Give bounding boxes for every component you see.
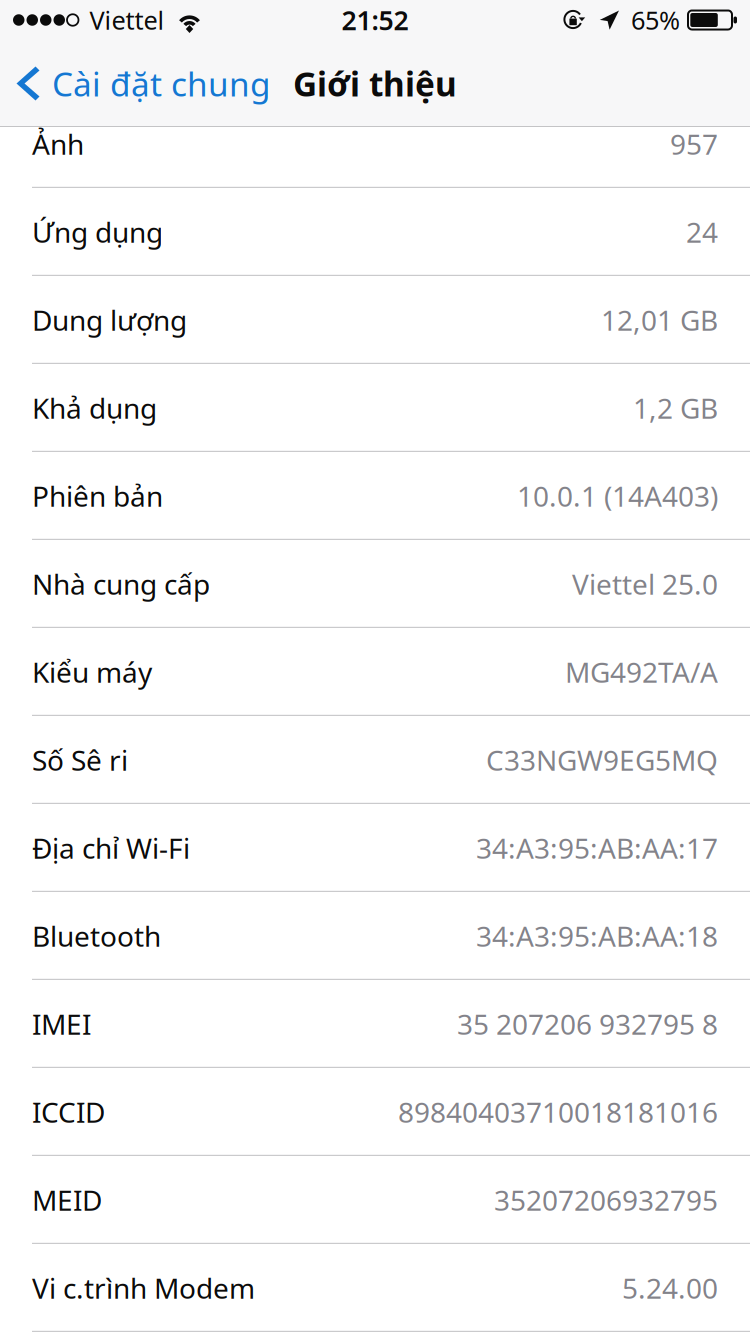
- staticText: Kiểu máy: [32, 653, 152, 690]
- staticText: 5.24.00: [622, 1269, 718, 1306]
- staticText: MEID: [32, 1181, 102, 1218]
- button[interactable]: Địa chỉ Wi-Fi: [0, 804, 750, 892]
- button[interactable]: ICCID: [0, 1068, 750, 1156]
- button[interactable]: Khả dụng: [0, 364, 750, 452]
- staticText: Khả dụng: [32, 389, 157, 426]
- staticText: IMEI: [32, 1005, 91, 1042]
- staticText: 35207206932795: [494, 1181, 718, 1218]
- staticText: 65%: [631, 3, 680, 37]
- staticText: Ảnh: [32, 125, 84, 162]
- staticText: 34:A3:95:AB:AA:18: [476, 917, 718, 954]
- staticText: 24: [686, 213, 718, 250]
- button[interactable]: MEID: [0, 1156, 750, 1244]
- staticText: Giới thiệu: [293, 61, 457, 106]
- button[interactable]: IMEI: [0, 980, 750, 1068]
- staticText: Viettel: [89, 3, 164, 37]
- staticText: Ứng dụng: [32, 213, 163, 250]
- button[interactable]: Ứng dụng: [0, 188, 750, 276]
- staticText: Vi c.trình Modem: [32, 1269, 255, 1306]
- staticText: 89840403710018181016: [398, 1093, 718, 1130]
- staticText: MG492TA/A: [565, 653, 718, 690]
- button[interactable]: Phiên bản: [0, 452, 750, 540]
- button[interactable]: Vi c.trình Modem: [0, 1244, 750, 1332]
- button[interactable]: Nhà cung cấp: [0, 540, 750, 628]
- staticText: 957: [670, 125, 718, 162]
- button[interactable]: Bluetooth: [0, 892, 750, 980]
- button[interactable]: Ảnh: [0, 100, 750, 188]
- button[interactable]: Kiểu máy: [0, 628, 750, 716]
- staticText: 21:52: [341, 2, 408, 38]
- staticText: Phiên bản: [32, 477, 163, 514]
- staticText: 35 207206 932795 8: [457, 1005, 718, 1042]
- staticText: Số Sê ri: [32, 741, 128, 778]
- staticText: Bluetooth: [32, 917, 161, 954]
- staticText: Cài đặt chung: [52, 61, 271, 106]
- staticText: Viettel 25.0: [572, 565, 718, 602]
- staticText: 34:A3:95:AB:AA:17: [476, 829, 718, 866]
- button[interactable]: Số Sê ri: [0, 716, 750, 804]
- staticText: Địa chỉ Wi-Fi: [32, 829, 190, 866]
- button[interactable]: Dung lượng: [0, 276, 750, 364]
- staticText: 10.0.1 (14A403): [517, 477, 718, 514]
- staticText: C33NGW9EG5MQ: [486, 741, 718, 778]
- staticText: 12,01 GB: [601, 301, 718, 338]
- staticText: ICCID: [32, 1093, 105, 1130]
- button[interactable]: Cài đặt chung: [0, 49, 283, 118]
- staticText: Nhà cung cấp: [32, 565, 210, 602]
- staticText: Dung lượng: [32, 301, 187, 338]
- staticText: 1,2 GB: [633, 389, 718, 426]
